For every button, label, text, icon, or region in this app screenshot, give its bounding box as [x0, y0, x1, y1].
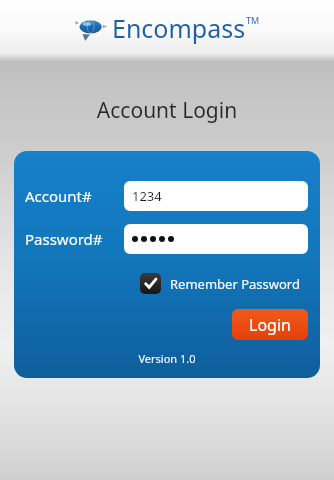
staticText: Account Login	[0, 96, 334, 125]
button[interactable]: 1234	[124, 181, 308, 211]
other: Encompass logo	[75, 13, 109, 43]
staticText: Remember Password	[170, 275, 300, 293]
staticText: Login	[249, 314, 291, 336]
staticText: 1234	[132, 187, 162, 205]
staticText: Account#	[25, 186, 92, 206]
staticText: Password#	[25, 229, 103, 249]
staticText: Encompass	[112, 11, 246, 45]
button[interactable]: Login	[232, 309, 308, 340]
staticText: TM	[246, 14, 260, 26]
button[interactable]	[124, 224, 308, 254]
button[interactable]: Remember Password	[138, 270, 302, 297]
staticText: Version 1.0	[14, 351, 320, 366]
